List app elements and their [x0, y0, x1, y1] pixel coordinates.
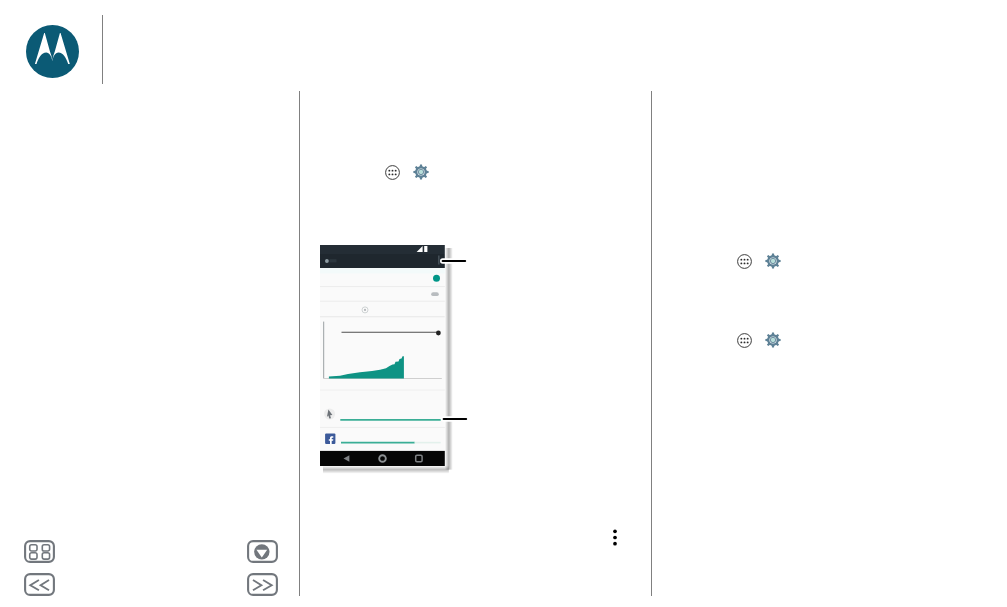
button[interactable]: Apps: [737, 254, 752, 269]
button[interactable]: Settings: [413, 164, 429, 180]
button[interactable]: Next page: [247, 573, 278, 596]
button[interactable]: Settings: [765, 332, 781, 348]
button[interactable]: Scroll down: [247, 540, 278, 563]
button[interactable]: Motorola logo: [26, 25, 79, 78]
button[interactable]: Settings: [765, 253, 781, 269]
button[interactable]: Apps: [737, 333, 752, 348]
button[interactable]: Previous page: [24, 573, 55, 596]
button[interactable]: More options: [609, 529, 621, 546]
button[interactable]: Apps: [385, 165, 400, 180]
button[interactable]: Menu: [24, 540, 55, 563]
